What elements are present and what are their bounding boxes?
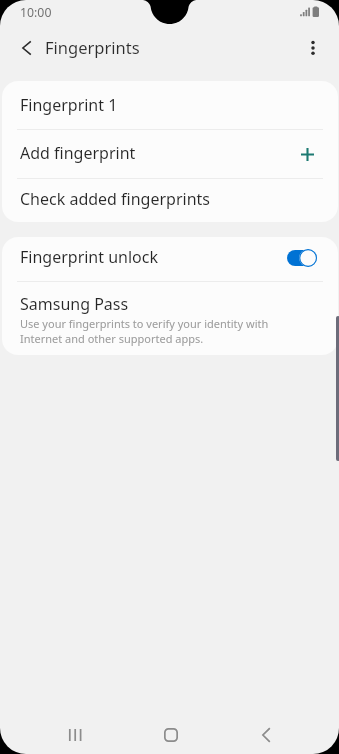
button[interactable]: More options [291, 26, 335, 70]
button[interactable]: Navigate up [4, 26, 48, 70]
staticText: Check added fingerprints [20, 188, 210, 210]
staticText: Fingerprints [45, 36, 140, 58]
button[interactable]: Add fingerprint [2, 130, 338, 178]
button[interactable]: Fingerprint unlock [2, 237, 338, 281]
button[interactable]: Home [147, 711, 194, 754]
staticText: 10:00 [20, 4, 52, 21]
button[interactable]: Recent apps [52, 711, 99, 754]
button[interactable]: Back [242, 711, 289, 754]
staticText: Samsung Pass [20, 293, 129, 315]
staticText: Fingerprint 1 [20, 94, 118, 116]
staticText: Add fingerprint [20, 142, 136, 164]
button[interactable]: Samsung Pass [2, 282, 338, 355]
staticText: Use your fingerprints to verify your ide… [20, 316, 269, 346]
button[interactable]: Check added fingerprints [2, 179, 338, 222]
button[interactable]: Fingerprint 1 [2, 81, 338, 129]
staticText: Fingerprint unlock [20, 246, 159, 268]
